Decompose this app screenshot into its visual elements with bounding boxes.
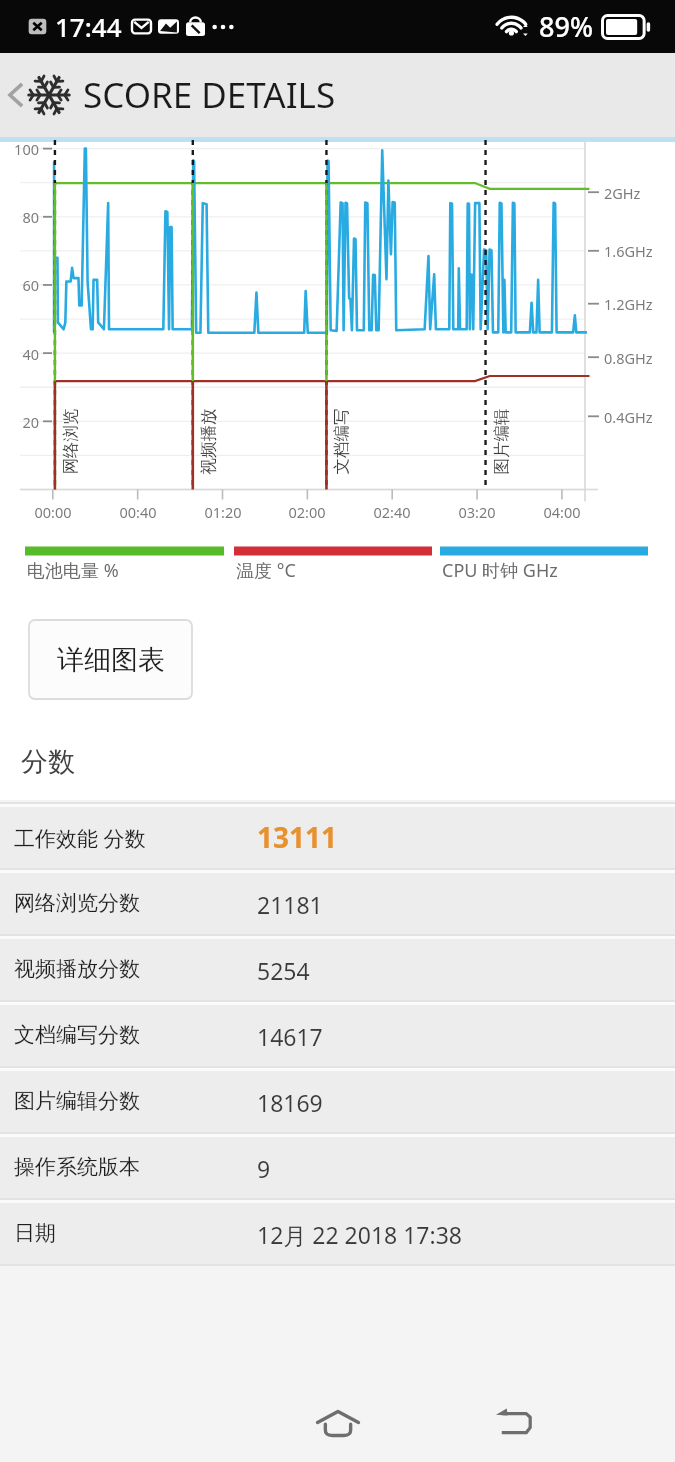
button[interactable]: 网络浏览分数 [0,873,675,934]
staticText: 2GHz [604,183,675,203]
staticText: 视频播放分数 [14,956,140,982]
staticText: 02:00 [277,502,337,522]
staticText: 60 [0,275,39,295]
button[interactable]: 操作系统版本 [0,1137,675,1198]
staticText: 文档编写 [330,408,351,474]
staticText: 详细图表 [57,643,165,677]
staticText: 9 [257,1153,271,1184]
staticText: 网络浏览分数 [14,890,140,916]
staticText: 80 [0,207,39,227]
button[interactable]: Home [304,1396,372,1448]
staticText: 文档编写分数 [14,1022,140,1048]
staticText: 温度 °C [236,558,296,583]
staticText: 1.2GHz [604,294,675,314]
staticText: 5254 [257,955,310,986]
staticText: 0.4GHz [604,407,675,427]
button[interactable]: 详细图表 [29,620,192,699]
staticText: 网络浏览 [59,408,80,474]
staticText: CPU 时钟 GHz [442,558,558,583]
button[interactable]: 视频播放分数 [0,939,675,1000]
staticText: 20 [0,412,39,432]
staticText: 14617 [257,1021,323,1052]
staticText: 1.6GHz [604,241,675,261]
staticText: 89% [539,8,593,45]
staticText: 17:44 [55,9,122,44]
staticText: 0.8GHz [604,348,675,368]
button[interactable]: Back [4,65,26,125]
button[interactable]: 文档编写分数 [0,1005,675,1066]
staticText: 00:40 [108,502,168,522]
staticText: 工作效能 分数 [14,824,146,853]
staticText: 图片编辑分数 [14,1088,140,1114]
button[interactable]: 工作效能 分数 [0,807,675,868]
button[interactable]: 日期 [0,1203,675,1264]
staticText: 03:20 [447,502,507,522]
staticText: 分数 [21,745,75,779]
staticText: 图片编辑 [490,408,511,474]
staticText: 18169 [257,1087,323,1118]
staticText: 日期 [14,1220,56,1246]
staticText: 视频播放 [197,408,218,474]
staticText: 02:40 [362,502,422,522]
staticText: SCORE DETAILS [83,71,336,119]
staticText: 电池电量 % [27,558,119,583]
button[interactable]: Back [480,1396,548,1448]
staticText: 操作系统版本 [14,1154,140,1180]
staticText: 21181 [257,889,323,920]
staticText: 100 [0,139,39,159]
button[interactable]: 图片编辑分数 [0,1071,675,1132]
staticText: 04:00 [532,502,592,522]
staticText: 13111 [257,818,338,856]
staticText: 00:00 [23,502,83,522]
staticText: 40 [0,344,39,364]
staticText: 01:20 [193,502,253,522]
staticText: 12月 22 2018 17:38 [257,1219,462,1250]
